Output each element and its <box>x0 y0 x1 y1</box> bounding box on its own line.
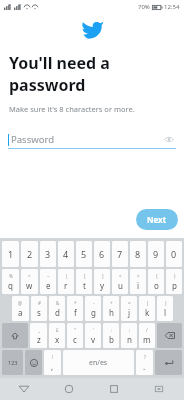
staticText: & <box>56 300 60 306</box>
staticText: b <box>109 334 114 345</box>
button[interactable]: ~ <box>40 269 56 294</box>
staticText: u <box>118 280 123 291</box>
staticText: ; <box>129 327 131 333</box>
button[interactable]: 6 <box>94 241 110 267</box>
staticText: - <box>93 300 95 306</box>
button[interactable]: @ <box>12 296 29 321</box>
staticText: c <box>73 334 77 345</box>
staticText: 7 <box>117 248 123 260</box>
staticText: Next <box>147 214 167 225</box>
staticText: h <box>109 307 114 318</box>
staticText: | <box>65 273 68 279</box>
button[interactable]: # <box>31 296 47 321</box>
staticText: f <box>74 307 77 318</box>
button[interactable]: ' <box>85 323 101 348</box>
button[interactable]: 3 <box>40 241 56 267</box>
button[interactable]: % <box>2 269 19 294</box>
staticText: ! <box>52 354 54 360</box>
staticText: t <box>83 280 86 291</box>
button[interactable]: Show password <box>162 132 176 146</box>
staticText: 2 <box>27 248 33 260</box>
button[interactable]: - <box>85 296 101 321</box>
staticText: a <box>18 307 23 318</box>
button[interactable]: 5 <box>76 241 92 267</box>
staticText: 3 <box>45 248 51 260</box>
staticText: < <box>119 273 122 279</box>
staticText: x <box>55 334 60 345</box>
button[interactable]: £ <box>49 323 65 348</box>
button[interactable]: ? <box>136 350 153 375</box>
staticText: Make sure it's 8 characters or more. <box>9 104 135 114</box>
staticText: o <box>154 280 159 291</box>
button[interactable]: / <box>139 323 155 348</box>
button[interactable]: 8 <box>130 241 146 267</box>
staticText: ) <box>165 300 167 306</box>
button[interactable]: | <box>58 269 74 294</box>
button[interactable]: 4 <box>58 241 74 267</box>
button[interactable]: Enter <box>155 350 182 375</box>
button[interactable]: Back <box>15 380 33 398</box>
button[interactable]: < <box>112 269 128 294</box>
staticText: v <box>91 334 96 345</box>
button[interactable]: ^ <box>21 269 38 294</box>
staticText: 8 <box>135 248 141 260</box>
button[interactable]: 7 <box>112 241 128 267</box>
staticText: You'll need a password <box>9 52 176 96</box>
button[interactable]: ( <box>139 296 155 321</box>
staticText: p <box>172 280 177 291</box>
staticText: % <box>9 273 13 279</box>
staticText: * <box>74 300 77 306</box>
staticText: / <box>146 327 148 333</box>
staticText: + <box>110 300 113 306</box>
button[interactable]: > <box>130 269 146 294</box>
staticText: # <box>38 300 41 306</box>
button[interactable]: * <box>67 296 83 321</box>
staticText: } <box>174 273 176 279</box>
staticText: { <box>156 273 158 279</box>
button[interactable]: & <box>49 296 65 321</box>
button[interactable]: " <box>67 323 83 348</box>
button[interactable]: Next <box>136 209 178 230</box>
button[interactable]: } <box>166 269 182 294</box>
button[interactable]: Shift <box>2 323 28 348</box>
staticText: £ <box>56 327 59 333</box>
staticText: 1 <box>8 248 14 260</box>
button[interactable]: Home <box>60 380 78 398</box>
staticText: 6 <box>99 248 105 260</box>
staticText: . <box>143 361 146 372</box>
button[interactable]: ! <box>44 350 61 375</box>
button[interactable]: + <box>103 296 119 321</box>
button[interactable]: { <box>148 269 164 294</box>
staticText: : <box>111 327 113 333</box>
button[interactable]: ; <box>121 323 137 348</box>
button[interactable]: _ <box>30 323 47 348</box>
button[interactable]: ) <box>157 296 173 321</box>
staticText: ~ <box>47 273 50 279</box>
staticText: e <box>46 280 51 291</box>
button[interactable]: Password <box>8 130 176 148</box>
button[interactable]: Emoji <box>25 350 42 375</box>
button[interactable]: : <box>103 323 119 348</box>
staticText: 12:54 <box>164 3 180 11</box>
button[interactable]: en/es <box>63 350 134 375</box>
button[interactable]: 9 <box>148 241 164 267</box>
staticText: j <box>128 307 131 318</box>
button[interactable]: Backspace <box>157 323 182 348</box>
staticText: q <box>8 280 13 291</box>
button[interactable]: 0 <box>166 241 182 267</box>
staticText: s <box>37 307 41 318</box>
button[interactable]: [ <box>76 269 92 294</box>
staticText: 9 <box>153 248 159 260</box>
staticText: 70% <box>138 3 150 11</box>
button[interactable]: ] <box>94 269 110 294</box>
button[interactable]: 2 <box>21 241 38 267</box>
button[interactable]: Recents <box>105 380 123 398</box>
button[interactable]: 1 <box>2 241 19 267</box>
staticText: ? <box>144 354 146 360</box>
button[interactable]: Symbols <box>2 350 23 375</box>
button[interactable]: Screenshot <box>150 380 168 398</box>
button[interactable]: = <box>121 296 137 321</box>
staticText: k <box>145 307 150 318</box>
staticText: n <box>127 334 132 345</box>
staticText: 5 <box>81 248 87 260</box>
